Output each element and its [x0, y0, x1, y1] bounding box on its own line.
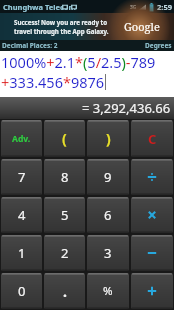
staticText: )	[106, 129, 111, 148]
button[interactable]: 9	[87, 159, 129, 195]
button[interactable]: Advertisement	[0, 13, 174, 40]
staticText: 2:59	[157, 2, 172, 12]
button[interactable]: Divide	[131, 159, 173, 195]
staticText: 7	[18, 168, 26, 186]
staticText: 6	[104, 206, 112, 224]
button[interactable]: 2	[44, 235, 85, 271]
staticText: 3	[104, 244, 112, 262]
staticText: (	[62, 129, 67, 148]
button[interactable]: = 3,292,436.66	[0, 97, 174, 119]
button[interactable]: C	[131, 120, 173, 157]
staticText: C	[148, 130, 157, 148]
staticText: 4	[18, 206, 26, 224]
staticText: 2	[61, 244, 69, 262]
staticText: 1	[18, 244, 26, 262]
staticText: Chunghwa Telecom	[3, 2, 76, 12]
staticText: +333.456*9876	[1, 72, 105, 92]
staticText: Success! Now you are ready to	[14, 18, 108, 26]
staticText: 9	[104, 168, 112, 186]
button[interactable]: 5	[44, 197, 85, 233]
button[interactable]: 1000%+2.1*(5/2.5)-789	[0, 51, 174, 97]
staticText: Adv.	[12, 133, 31, 145]
button[interactable]: 6	[87, 197, 129, 233]
staticText: Google	[124, 19, 160, 34]
button[interactable]: %	[87, 273, 129, 309]
button[interactable]: Add	[131, 273, 173, 309]
button[interactable]: Subtract	[131, 235, 173, 271]
button[interactable]: Adv.	[1, 120, 42, 157]
button[interactable]: 1	[1, 235, 42, 271]
button[interactable]: 8	[44, 159, 85, 195]
button[interactable]: 4	[1, 197, 42, 233]
staticText: travel through the App Galaxy.	[14, 27, 109, 35]
staticText: 5	[61, 206, 69, 224]
staticText: 3G	[130, 4, 137, 11]
button[interactable]: (	[44, 120, 85, 157]
staticText: %	[103, 283, 113, 299]
staticText: .	[63, 282, 67, 301]
button[interactable]: 7	[1, 159, 42, 195]
staticText: Decimal Places: 2	[2, 41, 58, 50]
button[interactable]: )	[87, 120, 129, 157]
button[interactable]: .	[44, 273, 85, 309]
staticText: Degrees	[145, 41, 172, 50]
button[interactable]: Multiply	[131, 197, 173, 233]
staticText: = 3,292,436.66	[82, 99, 171, 117]
button[interactable]: 3	[87, 235, 129, 271]
staticText: 8	[61, 168, 69, 186]
staticText: 0	[18, 282, 26, 300]
button[interactable]: 0	[1, 273, 42, 309]
staticText: 1000%+2.1*(5/2.5)-789	[1, 52, 156, 72]
